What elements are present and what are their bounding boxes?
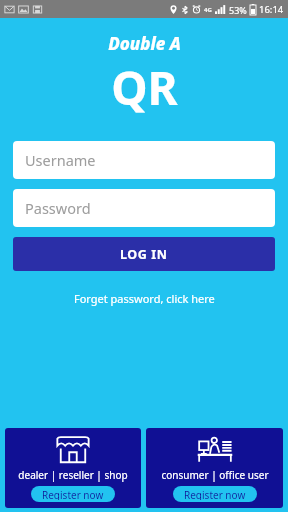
staticText: Double A xyxy=(108,32,181,55)
button[interactable]: Username xyxy=(13,141,275,179)
other: Dealer reseller shop xyxy=(56,436,90,463)
other: Consumer office user xyxy=(197,436,233,463)
staticText: Register now xyxy=(184,488,246,500)
staticText: Password xyxy=(25,198,91,218)
staticText: consumer | office user xyxy=(161,468,269,482)
button[interactable]: Forget password, click here xyxy=(66,289,223,308)
staticText: 4G xyxy=(204,6,212,14)
button[interactable]: Consumer office user xyxy=(146,428,283,508)
staticText: QR xyxy=(111,56,178,119)
staticText: Register now xyxy=(42,488,104,500)
staticText: 16:14 xyxy=(259,3,284,16)
button[interactable]: Register now xyxy=(173,486,257,502)
button[interactable]: Password xyxy=(13,189,275,227)
staticText: Forget password, click here xyxy=(74,291,215,306)
staticText: 53% xyxy=(229,4,247,16)
button[interactable]: Register now xyxy=(31,486,115,502)
button[interactable]: LOG IN xyxy=(13,237,275,271)
staticText: Username xyxy=(25,150,96,170)
button[interactable]: Dealer reseller shop xyxy=(5,428,141,508)
staticText: LOG IN xyxy=(120,246,168,263)
staticText: dealer | reseller | shop xyxy=(18,468,128,482)
